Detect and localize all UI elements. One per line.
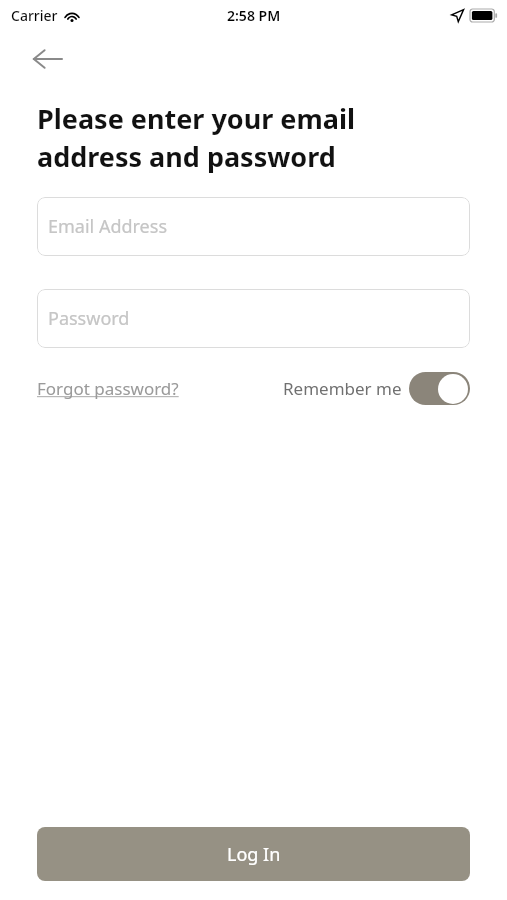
button[interactable]: Remember me xyxy=(283,372,470,405)
staticText: 2:58 PM xyxy=(227,6,281,25)
button[interactable]: Remember me toggle xyxy=(409,372,470,405)
staticText: Log In xyxy=(227,842,281,867)
staticText: Forgot password? xyxy=(37,377,179,400)
button[interactable]: Back xyxy=(23,37,71,81)
staticText: Remember me xyxy=(283,377,402,400)
button[interactable]: Password xyxy=(37,289,470,348)
button[interactable]: Log In xyxy=(37,827,470,881)
staticText: Please enter your email address and pass… xyxy=(37,100,356,175)
staticText: Carrier xyxy=(11,6,58,25)
staticText: Email Address xyxy=(48,214,168,239)
button[interactable]: Forgot password? xyxy=(37,377,179,400)
staticText: Password xyxy=(48,306,130,331)
button[interactable]: Email Address xyxy=(37,197,470,256)
